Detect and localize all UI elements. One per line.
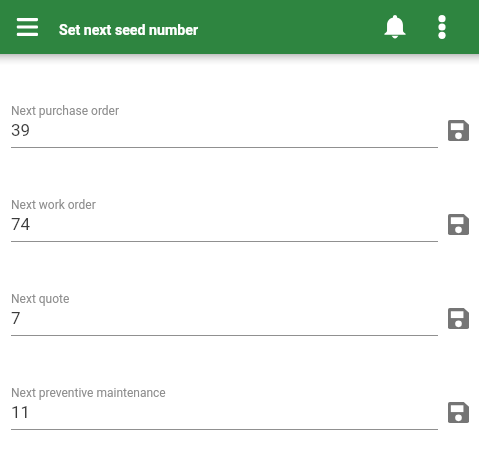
button[interactable]: Save Next preventive maintenance: [448, 402, 469, 423]
button[interactable]: Notifications: [377, 9, 413, 45]
staticText: 74: [11, 214, 31, 234]
staticText: 11: [11, 402, 31, 422]
button[interactable]: Save Next quote: [448, 308, 469, 329]
staticText: Next work order: [11, 198, 96, 212]
staticText: Next quote: [11, 292, 70, 306]
button[interactable]: Save Next work order: [448, 214, 469, 235]
staticText: 7: [11, 308, 21, 328]
staticText: Next preventive maintenance: [11, 386, 166, 400]
staticText: Set next seed number: [59, 22, 199, 39]
button[interactable]: Open navigation menu: [9, 9, 45, 45]
staticText: Next purchase order: [11, 104, 120, 118]
button[interactable]: More options: [424, 9, 460, 45]
staticText: 39: [11, 120, 31, 140]
button[interactable]: Save Next purchase order: [448, 120, 469, 141]
